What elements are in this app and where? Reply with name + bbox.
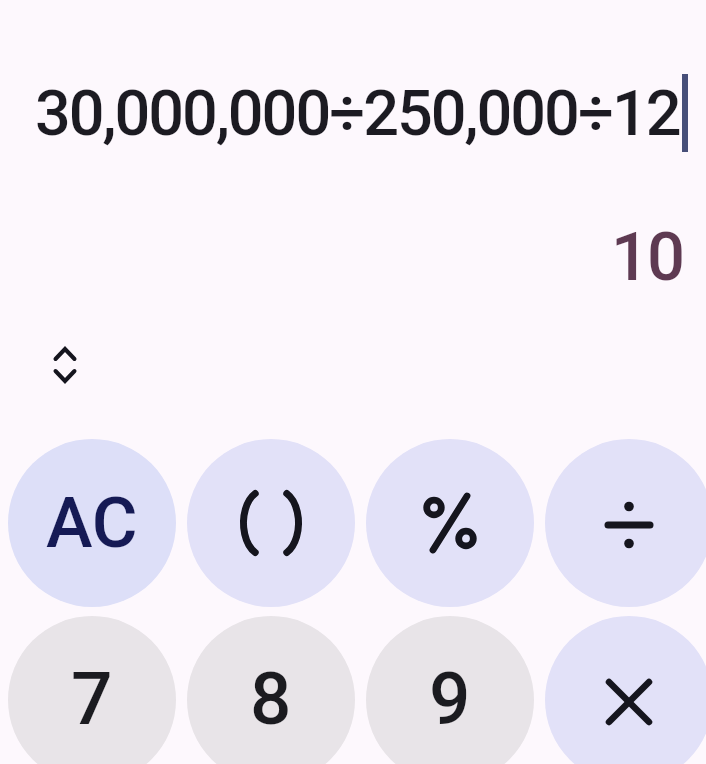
button[interactable]: 7 [8,616,176,764]
button[interactable] [41,341,89,389]
staticText: 7 [71,656,113,742]
button[interactable] [545,616,706,764]
staticText: 30,000,000÷250,000÷12 [35,77,680,151]
staticText: 10 [611,218,684,297]
button[interactable] [187,439,355,607]
button[interactable]: 8 [187,616,355,764]
staticText: 8 [250,656,292,742]
button[interactable]: 9 [366,616,534,764]
staticText: AC [46,482,138,564]
staticText: 9 [429,656,471,742]
button[interactable] [545,439,706,607]
button[interactable] [366,439,534,607]
button[interactable]: AC [8,439,176,607]
